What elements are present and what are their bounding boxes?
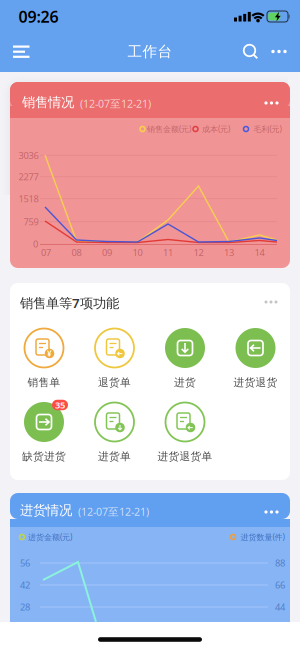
staticText: 进货退货 [233,376,277,389]
staticText: 退货单 [98,376,131,389]
staticText: 工作台 [127,42,172,60]
staticText: 2277 [18,170,38,183]
staticText: 56 [20,557,30,569]
staticText: 销售单等7项功能 [20,294,119,312]
staticText: 88 [275,557,285,569]
staticText: 进货情况 [20,502,72,518]
button[interactable]: 进货退货单 [148,401,222,465]
staticText: (12-07至12-21) [80,96,151,111]
button[interactable]: 35 [7,401,81,465]
staticText: 44 [275,601,285,613]
staticText: 07 [41,246,51,259]
staticText: ¥ [47,348,52,359]
staticText: 35 [55,399,65,411]
staticText: 09 [102,246,112,259]
staticText: 14 [254,246,264,259]
staticText: 10 [132,246,142,259]
button[interactable]: More [268,37,290,65]
staticText: 缺货进货 [22,450,66,463]
staticText: 08 [71,246,81,259]
staticText: 进货数量(件) [240,532,284,542]
staticText: 66 [275,579,285,591]
button[interactable]: More [262,291,280,313]
staticText: 销售情况 [22,94,74,110]
staticText: 销售单 [27,376,60,389]
button[interactable]: Menu [8,37,38,67]
button[interactable]: 退货单 [77,327,151,391]
staticText: 13 [224,246,234,259]
staticText: 12 [193,246,203,259]
staticText: 进货退货单 [157,450,212,463]
button[interactable]: More [262,92,282,114]
staticText: 进货单 [98,450,131,463]
staticText: 11 [163,246,173,259]
staticText: 759 [23,215,38,228]
staticText: 进货金额(元) [28,532,72,542]
staticText: (12-07至12-21) [78,504,149,519]
staticText: 09:26 [18,6,58,27]
button[interactable]: 进货退货 [218,327,292,391]
staticText: 3036 [18,149,38,161]
staticText: 进货 [174,376,196,389]
staticText: 销售金额(元) [147,124,191,134]
staticText: 1518 [18,192,38,205]
button[interactable]: ¥ [7,327,81,391]
staticText: 成本(元) [202,124,230,134]
button[interactable]: More [262,501,282,523]
button[interactable]: 进货 [148,327,222,391]
staticText: 42 [20,579,30,591]
staticText: 0 [33,238,38,250]
button[interactable]: Search [236,37,264,65]
button[interactable]: 进货单 [77,401,151,465]
staticText: 毛利(元) [253,124,281,134]
staticText: 28 [20,601,30,613]
